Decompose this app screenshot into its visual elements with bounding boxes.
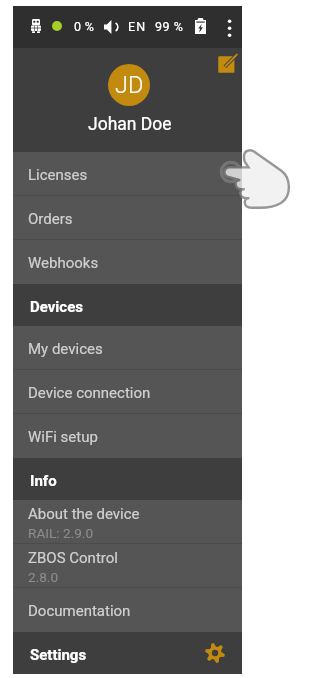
button[interactable]: About the device xyxy=(13,500,242,544)
staticText: About the device xyxy=(28,505,140,523)
button[interactable]: Licenses xyxy=(13,152,242,196)
staticText: Licenses xyxy=(28,166,88,184)
button[interactable]: Documentation xyxy=(13,588,242,632)
staticText: 99 % xyxy=(155,19,184,34)
button[interactable]: More options xyxy=(220,14,240,40)
button[interactable]: Settings xyxy=(13,632,242,674)
staticText: My devices xyxy=(28,340,103,358)
button[interactable]: Device connection xyxy=(13,370,242,414)
staticText: Devices xyxy=(30,298,83,316)
staticText: Orders xyxy=(28,210,73,228)
staticText: RAIL: 2.9.0 xyxy=(28,525,94,541)
staticText: EN xyxy=(128,19,147,34)
button[interactable]: Orders xyxy=(13,196,242,240)
staticText: Info xyxy=(30,472,57,490)
staticText: Webhooks xyxy=(28,254,99,272)
staticText: Documentation xyxy=(28,602,131,620)
staticText: 0 % xyxy=(74,19,95,34)
staticText: Johan Doe xyxy=(88,114,172,135)
staticText: ZBOS Control xyxy=(28,549,118,567)
staticText: WiFi setup xyxy=(28,428,98,446)
button[interactable]: Webhooks xyxy=(13,240,242,284)
staticText: 2.8.0 xyxy=(28,569,59,585)
staticText: JD xyxy=(115,71,144,99)
button[interactable]: My devices xyxy=(13,326,242,370)
staticText: Settings xyxy=(30,646,87,664)
staticText: Device connection xyxy=(28,384,151,402)
button[interactable]: WiFi setup xyxy=(13,414,242,458)
button[interactable]: ZBOS Control xyxy=(13,544,242,588)
button[interactable]: Edit profile xyxy=(215,51,239,75)
